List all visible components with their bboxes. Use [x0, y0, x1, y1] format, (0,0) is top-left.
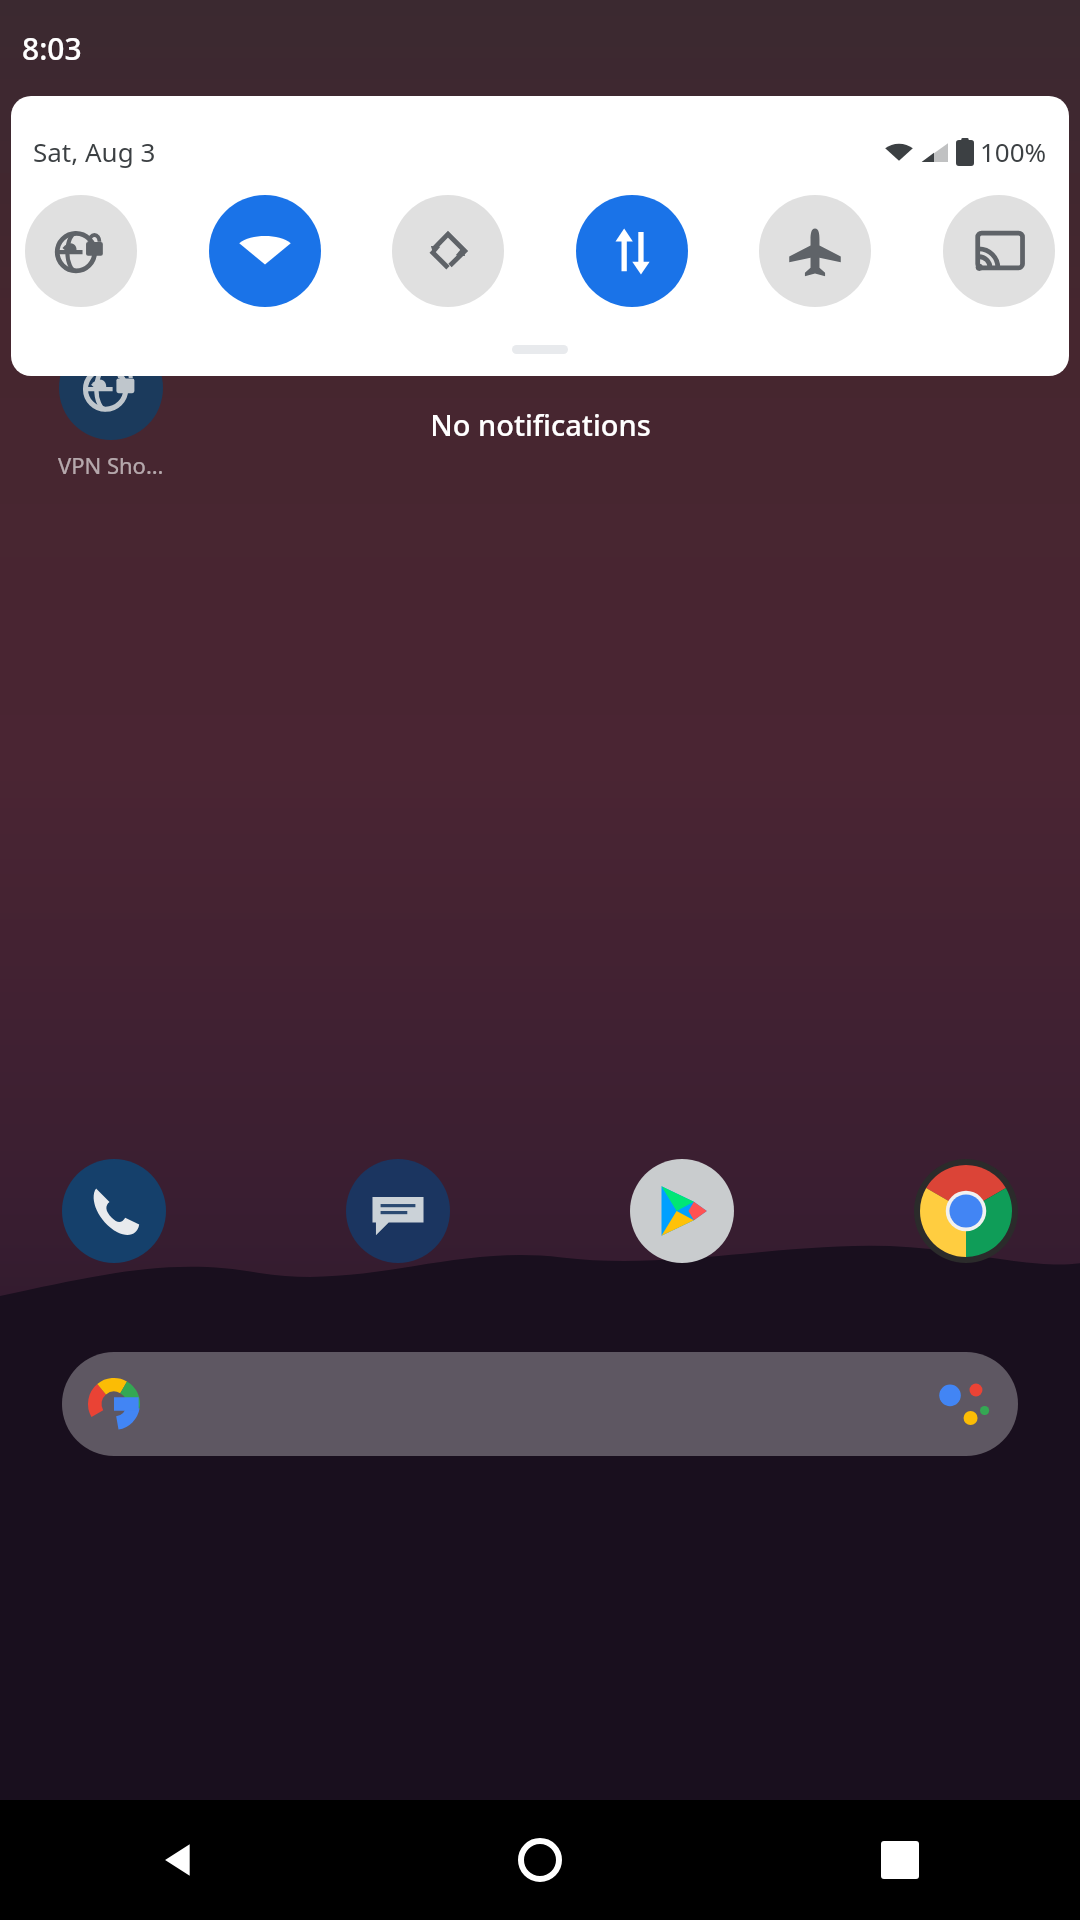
- button[interactable]: Wi-Fi: [209, 195, 321, 307]
- button[interactable]: [59, 336, 163, 440]
- button[interactable]: Messages: [346, 1159, 450, 1263]
- button[interactable]: Back: [0, 1800, 360, 1920]
- button[interactable]: Airplane mode: [759, 195, 871, 307]
- button[interactable]: Home: [360, 1800, 720, 1920]
- button[interactable]: Auto rotate: [392, 195, 504, 307]
- button[interactable]: Play Store: [630, 1159, 734, 1263]
- button[interactable]: Mobile data: [576, 195, 688, 307]
- staticText: 8:03: [22, 28, 82, 69]
- button[interactable]: [62, 1352, 1018, 1456]
- button[interactable]: Cast screen: [943, 195, 1055, 307]
- button[interactable]: Phone: [62, 1159, 166, 1263]
- button[interactable]: Chrome: [914, 1159, 1018, 1263]
- button[interactable]: Recent apps: [720, 1800, 1080, 1920]
- staticText: No notifications: [430, 405, 651, 444]
- button[interactable]: [512, 345, 568, 354]
- staticText: Sat, Aug 3: [33, 134, 156, 169]
- staticText: 100%: [980, 134, 1047, 169]
- staticText: VPN Sho…: [58, 450, 164, 480]
- button[interactable]: Internet VPN: [25, 195, 137, 307]
